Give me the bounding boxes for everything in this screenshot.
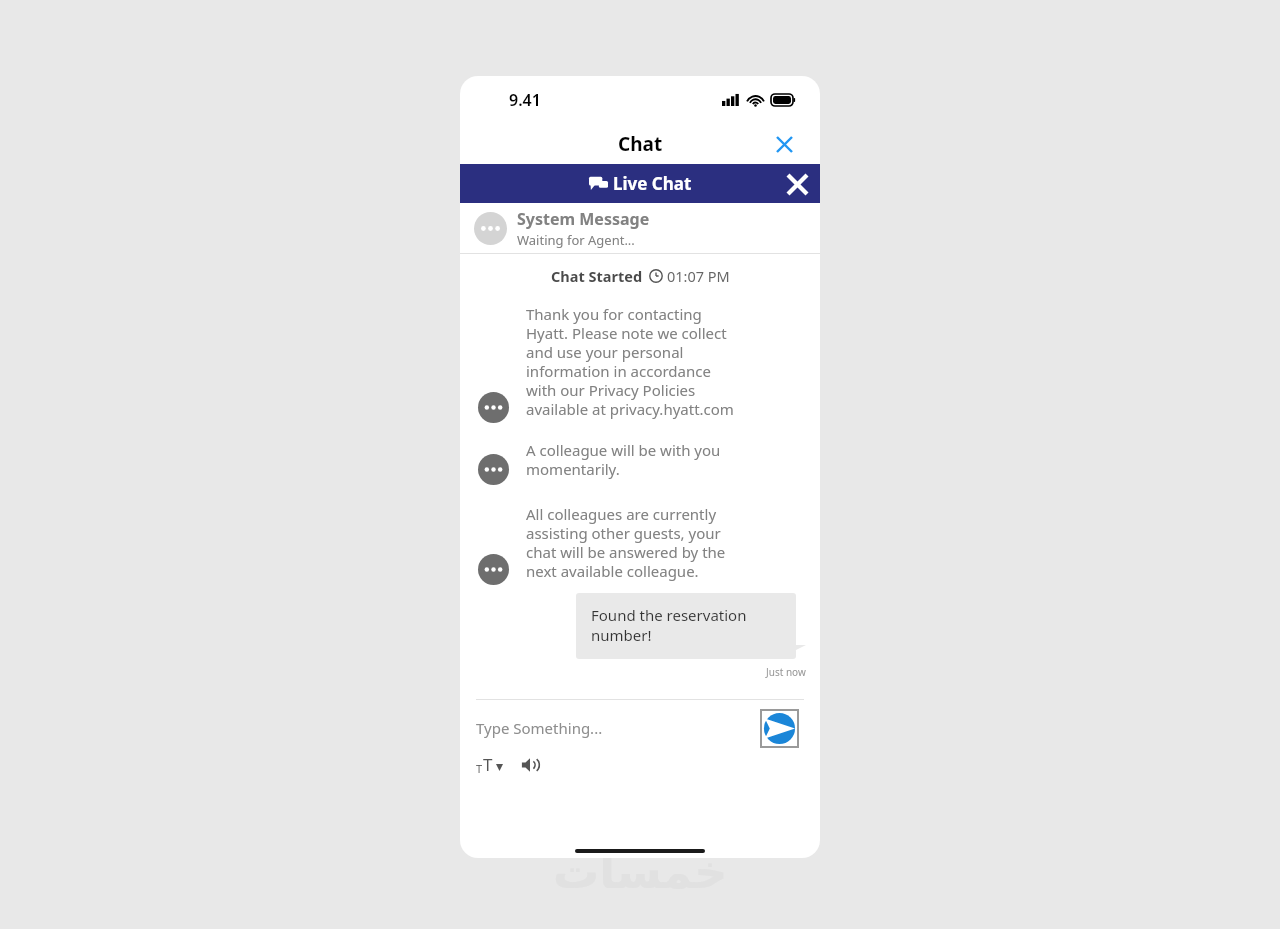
staticText: All colleagues are currently assisting o… <box>526 504 741 581</box>
button[interactable]: Send message <box>761 710 798 747</box>
staticText: Thank you for contacting Hyatt. Please n… <box>526 304 741 419</box>
staticText: 01:07 PM <box>667 266 730 286</box>
staticText: Live Chat <box>613 172 692 195</box>
staticText: Chat Started <box>551 266 643 286</box>
staticText: 9.41 <box>509 89 541 111</box>
button[interactable]: Found the reservation number! <box>576 593 796 659</box>
button[interactable]: Text size <box>476 753 503 776</box>
staticText: T <box>483 753 493 776</box>
staticText: A colleague will be with you momentarily… <box>526 440 741 479</box>
button[interactable]: Live Chat <box>589 172 692 195</box>
staticText: System Message <box>517 208 650 230</box>
staticText: Chat <box>618 131 663 157</box>
staticText: T <box>476 761 483 776</box>
staticText: Type Something... <box>476 718 603 738</box>
button[interactable]: Close chat <box>770 130 798 158</box>
staticText: Just now <box>766 665 806 679</box>
button[interactable]: Thank you for contacting Hyatt. Please n… <box>460 304 820 419</box>
staticText: خمسات <box>553 845 728 899</box>
button[interactable]: Sound <box>519 754 541 776</box>
button[interactable]: Close live chat <box>780 167 814 201</box>
staticText: Found the reservation number! <box>591 605 784 645</box>
button[interactable]: A colleague will be with you momentarily… <box>460 440 820 479</box>
button[interactable]: All colleagues are currently assisting o… <box>460 504 820 581</box>
staticText: Waiting for Agent... <box>517 231 635 249</box>
button[interactable]: System Message <box>460 203 820 253</box>
